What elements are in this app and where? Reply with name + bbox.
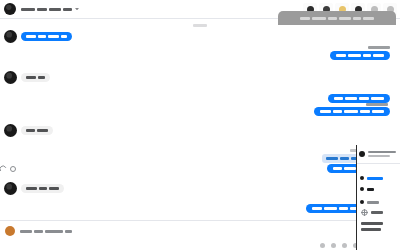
button[interactable]: [5, 221, 400, 241]
button[interactable]: [4, 124, 400, 137]
button[interactable]: Composer action: [342, 243, 347, 248]
button[interactable]: [306, 204, 378, 213]
button[interactable]: Extension: [351, 3, 365, 16]
button[interactable]: Reply: [0, 166, 6, 172]
button[interactable]: Menu item: [360, 176, 400, 180]
button[interactable]: Menu item: [360, 200, 400, 204]
button[interactable]: Composer action: [331, 243, 336, 248]
button[interactable]: [327, 164, 374, 173]
button[interactable]: [314, 107, 390, 116]
button[interactable]: Capture toolbar: [278, 11, 396, 25]
button[interactable]: [4, 71, 400, 84]
button[interactable]: [330, 51, 390, 60]
button[interactable]: [4, 3, 79, 15]
button[interactable]: [4, 182, 400, 195]
button[interactable]: [322, 154, 380, 163]
button[interactable]: Extension: [335, 3, 349, 16]
button[interactable]: [4, 30, 400, 43]
button[interactable]: Composer action: [353, 243, 358, 248]
button[interactable]: Extension: [319, 3, 333, 16]
button[interactable]: Menu item: [360, 187, 400, 191]
button[interactable]: Extension: [303, 3, 317, 16]
button[interactable]: [356, 145, 400, 163]
button[interactable]: Extension: [367, 3, 381, 16]
button[interactable]: Select region: [361, 209, 400, 216]
button[interactable]: [328, 94, 390, 103]
button[interactable]: React: [10, 166, 16, 172]
button[interactable]: Composer action: [320, 243, 325, 248]
button[interactable]: Extension: [383, 3, 397, 16]
